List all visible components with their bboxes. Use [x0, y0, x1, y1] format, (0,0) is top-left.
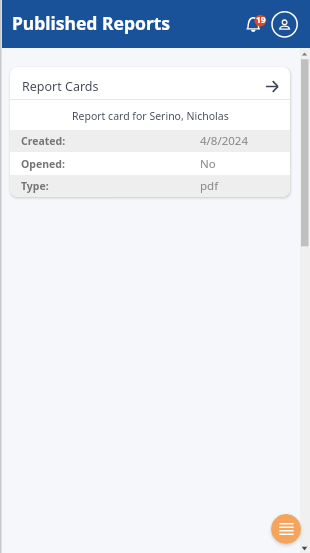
staticText: pdf — [200, 178, 219, 194]
button[interactable]: Notifications — [243, 10, 268, 36]
other: Open Report Cards — [266, 81, 278, 92]
staticText: Opened: — [21, 157, 65, 171]
button[interactable]: Profile — [270, 9, 300, 39]
staticText: No — [200, 156, 216, 172]
staticText: Type: — [21, 179, 49, 193]
staticText: Report Cards — [22, 78, 99, 95]
staticText: 19 — [256, 14, 266, 26]
staticText: 4/8/2024 — [200, 133, 249, 149]
staticText: Published Reports — [12, 11, 171, 35]
staticText: Created: — [21, 134, 66, 148]
button[interactable]: Menu — [271, 514, 301, 544]
staticText: Report card for Serino, Nicholas — [72, 109, 229, 123]
button[interactable]: Report Cards — [10, 67, 290, 99]
